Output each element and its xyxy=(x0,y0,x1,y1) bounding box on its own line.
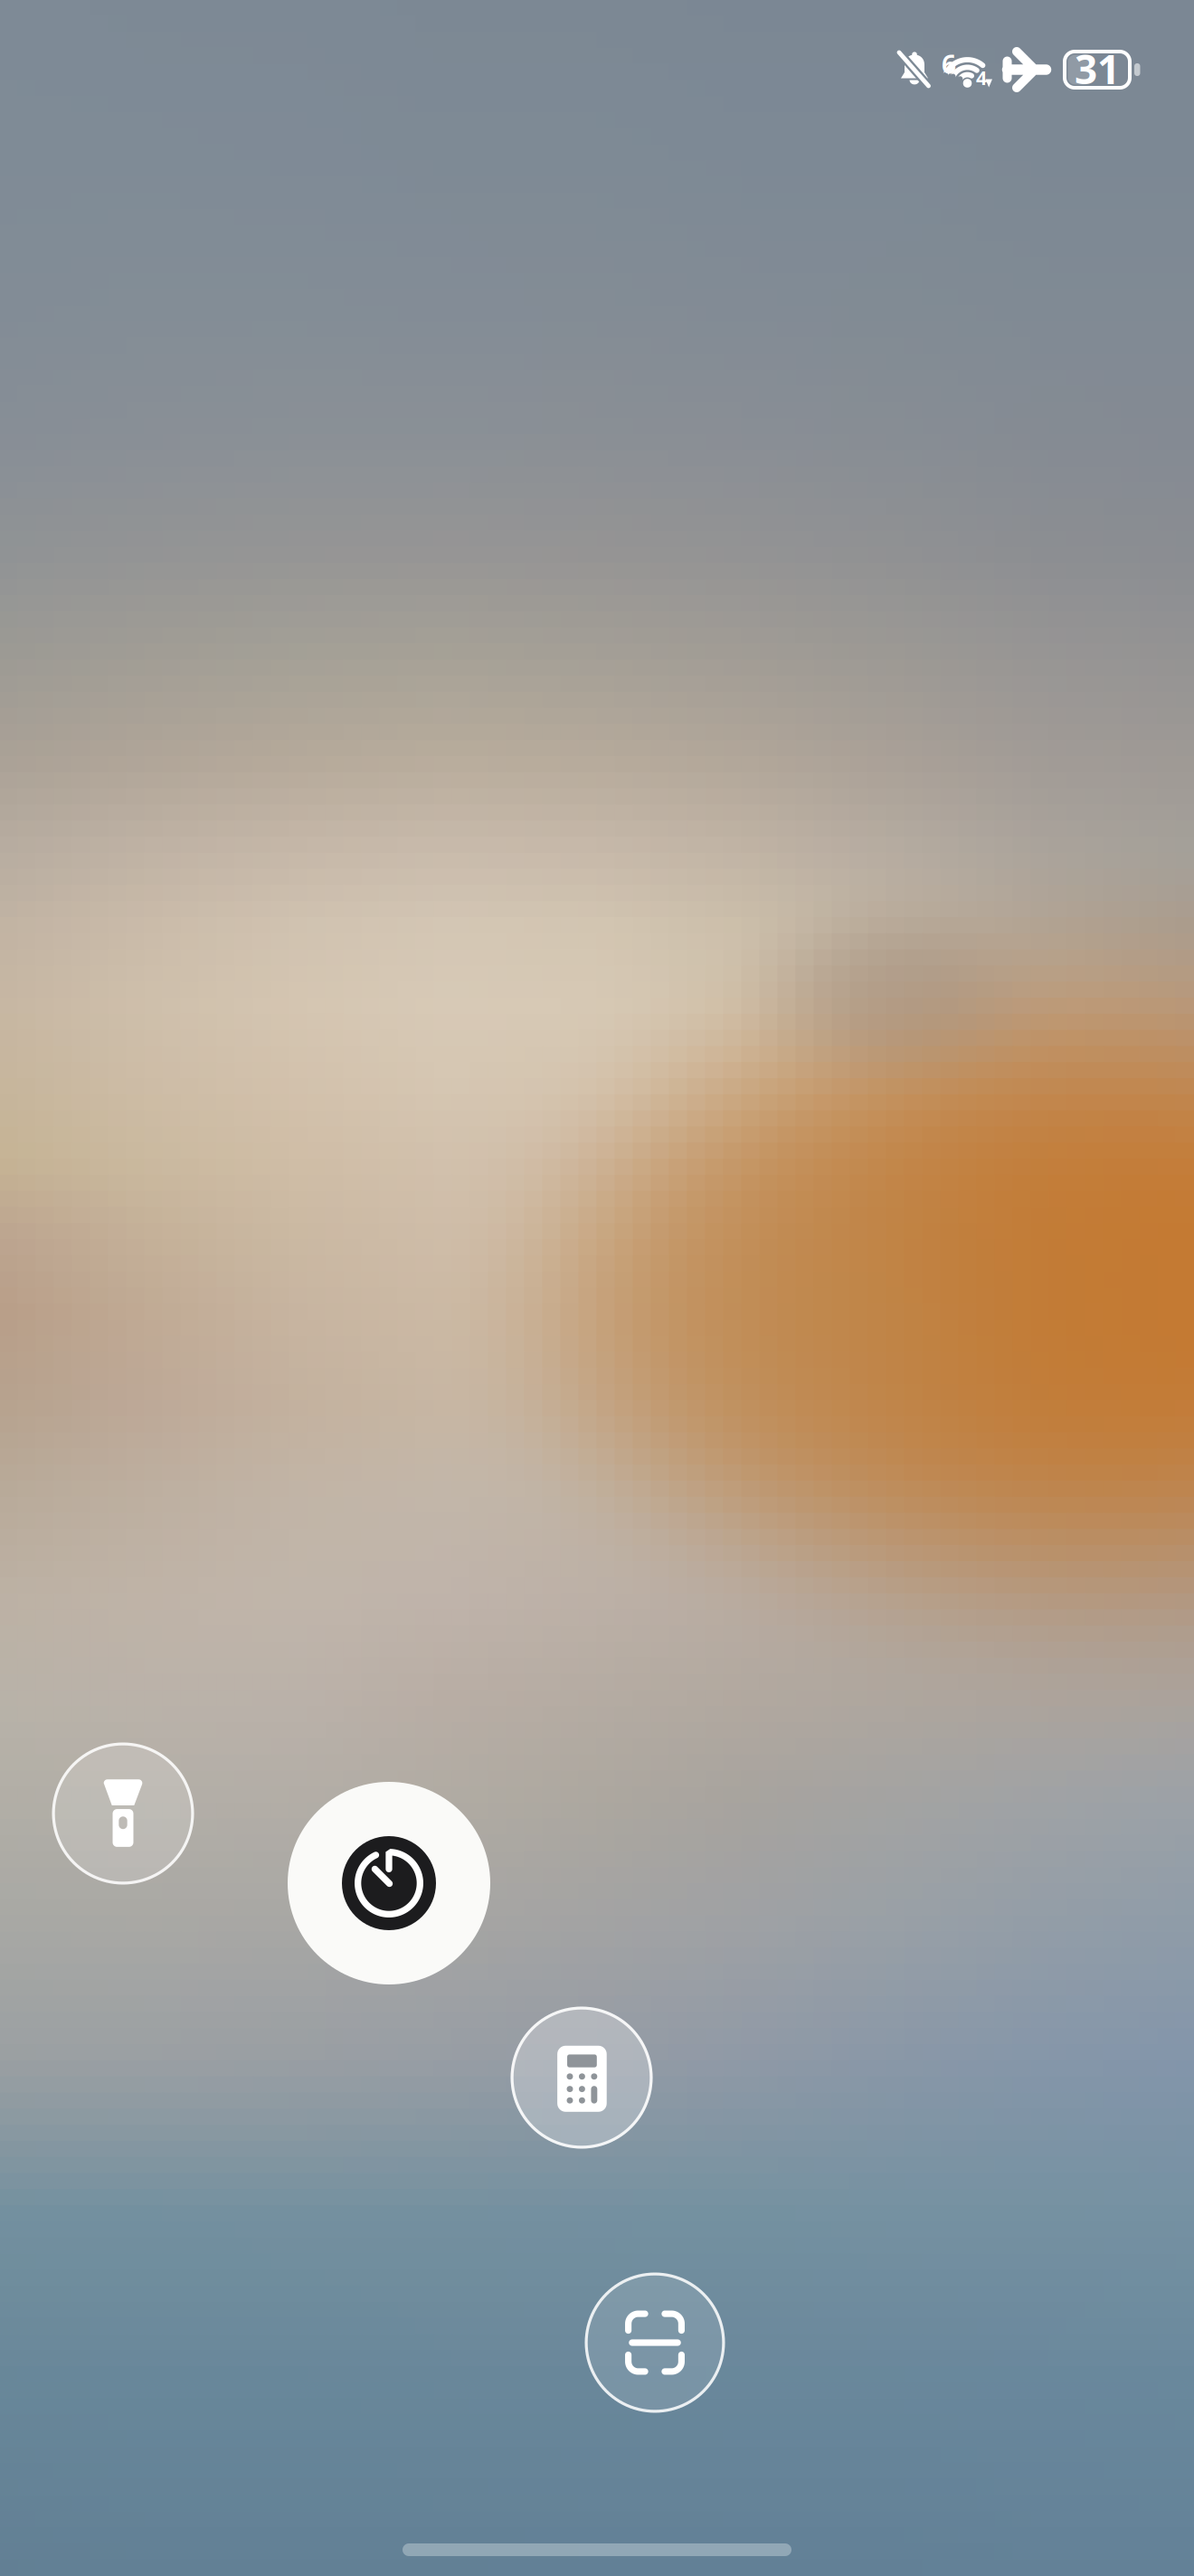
button[interactable]: Calculator xyxy=(511,2007,653,2149)
staticText: 31 xyxy=(1075,42,1120,95)
button[interactable]: Scan Document xyxy=(585,2273,725,2413)
button[interactable]: Flashlight xyxy=(52,1743,194,1885)
staticText: 4 xyxy=(976,65,987,90)
button[interactable]: Timer xyxy=(288,1782,490,1984)
staticText: 6 xyxy=(942,47,956,81)
